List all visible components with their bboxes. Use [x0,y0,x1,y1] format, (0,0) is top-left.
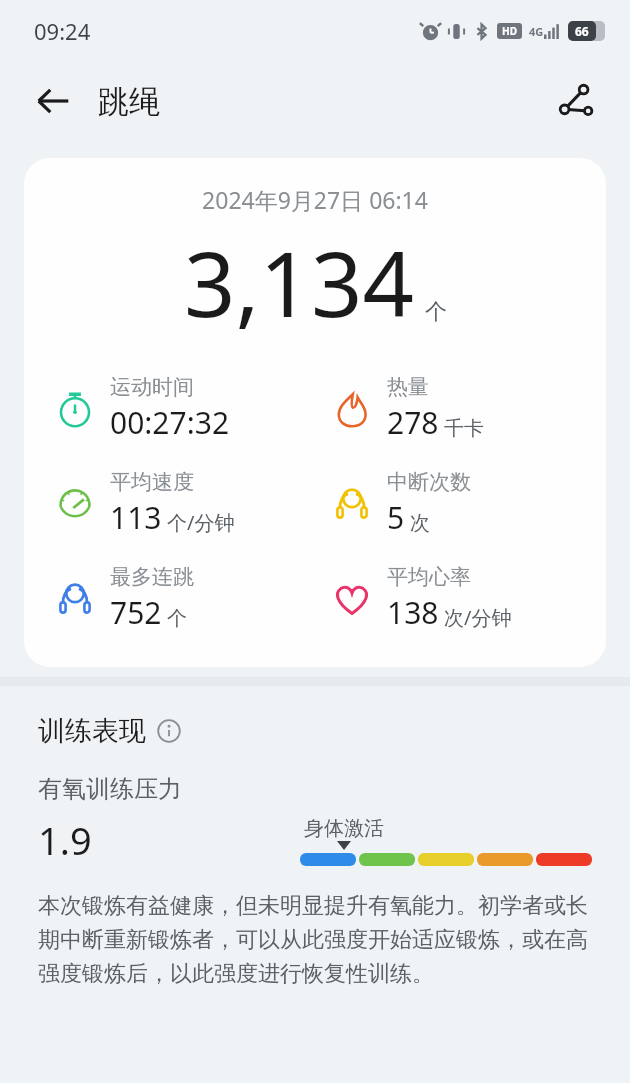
button[interactable]: 热量 [329,374,606,443]
button[interactable]: Share [550,75,602,127]
staticText: 次/分钟 [444,604,512,631]
staticText: 平均心率 [387,564,471,590]
staticText: 3,134 [184,221,415,344]
staticText: 次 [410,511,430,536]
staticText: 平均速度 [110,469,194,495]
staticText: 138 [387,592,439,633]
staticText: 00:27:32 [110,402,230,443]
other: Info [156,718,182,744]
staticText: 4G [529,24,544,39]
button[interactable]: Back [28,76,78,126]
staticText: 跳绳 [98,82,160,121]
staticText: 个 [167,606,187,631]
button[interactable]: 最多连跳 [52,564,315,633]
staticText: 09:24 [34,16,91,46]
button[interactable]: 运动时间 [52,374,315,443]
staticText: 有氧训练压力 [38,774,182,804]
staticText: 本次锻炼有益健康，但未明显提升有氧能力。初学者或长期中断重新锻炼者，可以从此强度… [38,892,592,988]
staticText: HD [502,24,517,38]
staticText: 最多连跳 [110,564,194,590]
staticText: 训练表现 [38,714,146,748]
staticText: 752 [110,592,162,633]
staticText: 5 [387,497,405,538]
staticText: 66 [575,23,589,39]
staticText: 热量 [387,374,429,400]
staticText: 个/分钟 [167,509,235,536]
button[interactable]: 训练表现 [38,714,182,748]
staticText: 1.9 [38,814,92,866]
staticText: 千卡 [444,416,484,441]
staticText: 中断次数 [387,469,471,495]
button[interactable]: 中断次数 [329,469,606,538]
staticText: 278 [387,402,439,443]
staticText: 运动时间 [110,374,194,400]
staticText: 个 [425,298,447,326]
button[interactable]: 平均心率 [329,564,606,633]
staticText: 身体激活 [304,816,384,841]
button[interactable]: 平均速度 [52,469,315,538]
staticText: 113 [110,497,162,538]
staticText: 2024年9月27日 06:14 [24,184,606,215]
